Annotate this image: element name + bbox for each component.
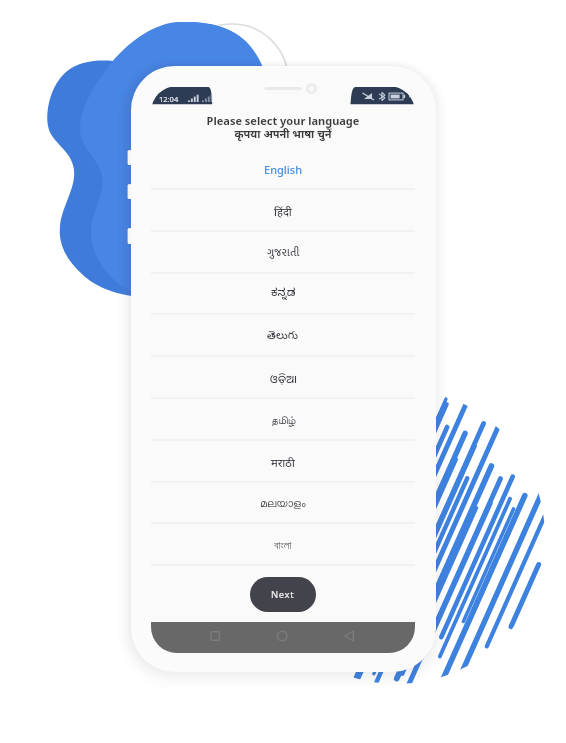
staticText: मराठी (271, 455, 295, 470)
staticText: कृपया अपनी भाषा चुनें (151, 126, 415, 141)
button[interactable]: मराठी (151, 441, 415, 483)
staticText: தமிழ் (271, 415, 296, 426)
staticText: తెలుగు (267, 329, 299, 344)
staticText: বাংলা (274, 540, 292, 551)
staticText: English (264, 162, 303, 177)
button[interactable]: ಕನ್ನಡ (151, 273, 415, 315)
button[interactable]: हिंदी (151, 190, 415, 232)
button[interactable]: English (151, 148, 415, 190)
other: System navigation (151, 622, 415, 653)
staticText: ગુજરાતી (267, 244, 300, 262)
button[interactable]: ଓଡ଼ିଆ (151, 357, 415, 399)
button[interactable]: తెలుగు (151, 315, 415, 357)
button[interactable]: বাংলা (151, 524, 415, 566)
staticText: हिंदी (274, 204, 292, 219)
button[interactable]: ગુજરાતી (151, 232, 415, 274)
staticText: 12:04 (159, 94, 179, 104)
staticText: ಕನ್ನಡ (271, 287, 296, 302)
staticText: Please select your language (151, 113, 415, 128)
button[interactable]: தமிழ் (151, 399, 415, 441)
staticText: Next (271, 588, 295, 601)
button[interactable]: മലയാളം (151, 482, 415, 524)
staticText: ଓଡ଼ିଆ (270, 371, 297, 386)
staticText: മലയാളം (260, 498, 306, 509)
button[interactable]: Next (250, 577, 316, 612)
